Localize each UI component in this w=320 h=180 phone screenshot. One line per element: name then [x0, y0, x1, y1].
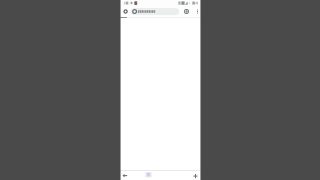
button[interactable]: Home page [144, 171, 153, 180]
button[interactable] [131, 8, 179, 15]
button[interactable]: Switch tabs [179, 7, 193, 16]
button[interactable]: Back [121, 172, 129, 180]
button[interactable]: New tab [191, 172, 199, 180]
button[interactable]: Home [120, 7, 131, 16]
button[interactable]: More options [193, 7, 201, 16]
